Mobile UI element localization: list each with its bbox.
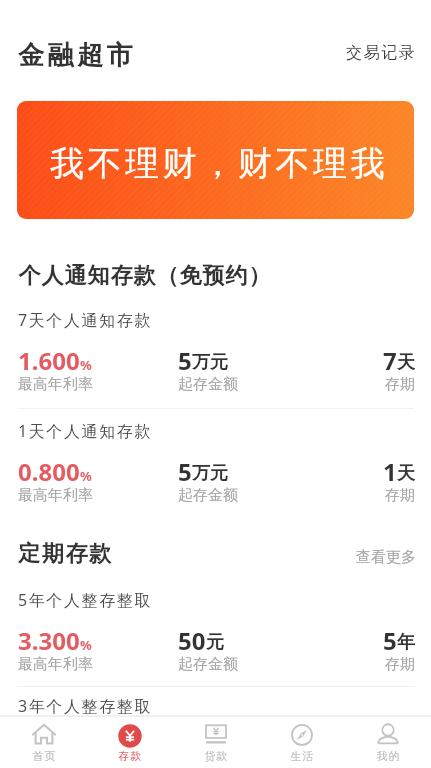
staticText: 最高年利率	[18, 375, 93, 394]
staticText: 5年个人整存整取	[18, 589, 152, 611]
button[interactable]: 贷款	[173, 717, 259, 768]
staticText: %	[80, 636, 92, 654]
button[interactable]: 7天个人通知存款	[0, 309, 431, 401]
staticText: 起存金额	[178, 655, 238, 674]
staticText: 起存金额	[178, 486, 238, 505]
staticText: 年	[397, 631, 415, 654]
staticText: 最高年利率	[18, 486, 93, 505]
staticText: 金融超市	[18, 39, 137, 72]
button[interactable]: 生活	[259, 717, 345, 768]
staticText: 7天个人通知存款	[18, 309, 152, 331]
button[interactable]: 金融超市	[18, 39, 137, 72]
staticText: 交易记录	[346, 43, 417, 63]
staticText: 3年个人整存整取	[18, 695, 152, 717]
staticText: 50	[178, 624, 206, 657]
staticText: 定期存款	[18, 540, 113, 568]
staticText: 5	[178, 344, 192, 377]
staticText: 天	[397, 462, 415, 485]
staticText: 0.800	[18, 455, 80, 488]
button[interactable]: 个人通知存款（免预约）	[18, 262, 271, 290]
staticText: 起存金额	[178, 375, 238, 394]
staticText: 存期	[385, 655, 415, 674]
staticText: %	[80, 356, 92, 374]
staticText: 我不理财，财不理我	[50, 142, 389, 185]
staticText: 元	[206, 631, 224, 654]
button[interactable]: 我的	[345, 717, 431, 768]
staticText: 5	[178, 455, 192, 488]
staticText: 生活	[290, 749, 314, 763]
button[interactable]: 5年个人整存整取	[0, 589, 431, 681]
button[interactable]: 存款	[87, 717, 173, 768]
staticText: 1	[383, 455, 397, 488]
staticText: 存款	[118, 749, 142, 763]
button[interactable]: 我不理财，财不理我	[17, 101, 414, 219]
staticText: 我的	[376, 749, 400, 763]
staticText: 5	[383, 624, 397, 657]
button[interactable]: 查看更多	[356, 548, 416, 567]
button[interactable]: 定期存款	[18, 540, 113, 568]
button[interactable]: 1天个人通知存款	[0, 420, 431, 512]
staticText: 首页	[32, 749, 56, 763]
staticText: 存期	[385, 486, 415, 505]
staticText: %	[80, 467, 92, 485]
staticText: 1天个人通知存款	[18, 420, 152, 442]
staticText: 万元	[192, 462, 228, 485]
staticText: 个人通知存款（免预约）	[18, 262, 271, 290]
staticText: 最高年利率	[18, 655, 93, 674]
staticText: 3.300	[18, 624, 80, 657]
button[interactable]: 交易记录	[346, 43, 417, 63]
button[interactable]: 首页	[0, 717, 87, 768]
staticText: 存期	[385, 375, 415, 394]
staticText: 7	[383, 344, 397, 377]
staticText: 1.600	[18, 344, 80, 377]
staticText: 贷款	[204, 749, 228, 763]
staticText: 查看更多	[356, 548, 416, 567]
staticText: 万元	[192, 351, 228, 374]
staticText: 天	[397, 351, 415, 374]
